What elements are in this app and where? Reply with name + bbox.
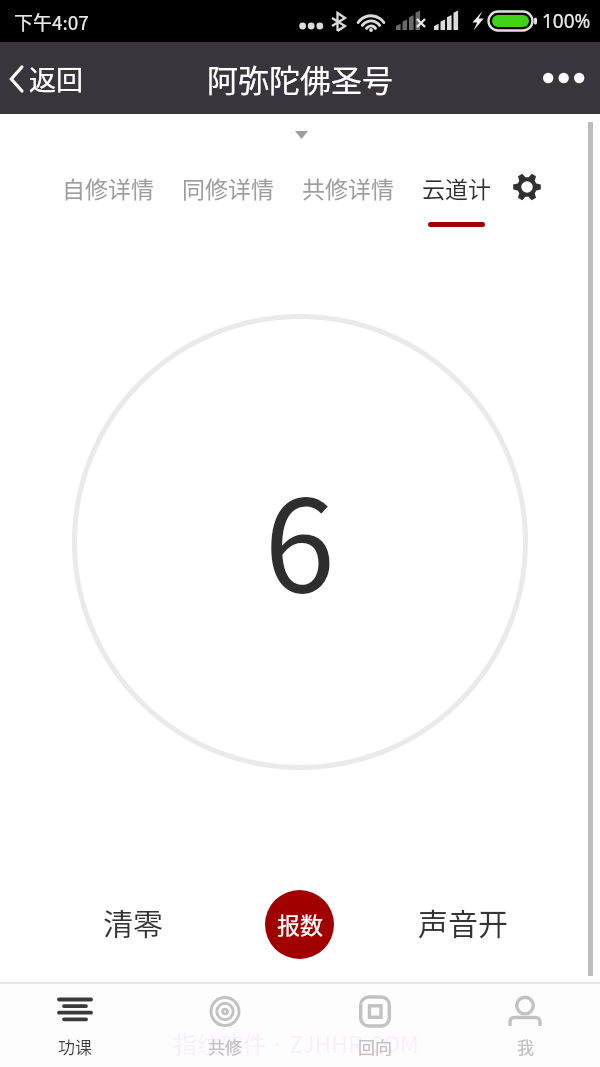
staticText: 同修详情: [182, 171, 274, 204]
button[interactable]: 我: [450, 984, 600, 1065]
button[interactable]: 报数: [265, 890, 334, 959]
button[interactable]: 共修详情: [288, 163, 408, 212]
button[interactable]: 云道计: [408, 163, 505, 235]
staticText: 报数: [277, 907, 323, 940]
button[interactable]: 自修详情: [48, 163, 168, 212]
button[interactable]: Settings: [505, 163, 552, 210]
staticText: 我: [517, 1034, 534, 1059]
button[interactable]: 共修: [150, 984, 300, 1065]
staticText: 共修详情: [302, 171, 394, 204]
button[interactable]: 功课: [0, 984, 150, 1065]
staticText: 清零: [103, 900, 163, 943]
button[interactable]: More options: [527, 51, 600, 105]
button[interactable]: 声音开: [408, 888, 518, 955]
staticText: 自修详情: [62, 171, 154, 204]
staticText: 阿弥陀佛圣号: [207, 56, 393, 101]
staticText: 下午4:07: [14, 8, 89, 36]
button[interactable]: 清零: [93, 888, 173, 955]
staticText: 共修: [208, 1034, 242, 1059]
button[interactable]: 返回: [0, 47, 97, 110]
staticText: 返回: [29, 59, 83, 98]
staticText: 声音开: [418, 900, 508, 943]
staticText: 云道计: [422, 171, 491, 204]
staticText: 6: [264, 444, 336, 629]
button[interactable]: 同修详情: [168, 163, 288, 212]
staticText: 指纹软件 · ZJHHR.COM: [174, 1026, 419, 1059]
button[interactable]: 回向: [300, 984, 450, 1065]
staticText: 回向: [358, 1034, 392, 1059]
staticText: 功课: [58, 1034, 92, 1059]
staticText: 100%: [542, 8, 591, 34]
